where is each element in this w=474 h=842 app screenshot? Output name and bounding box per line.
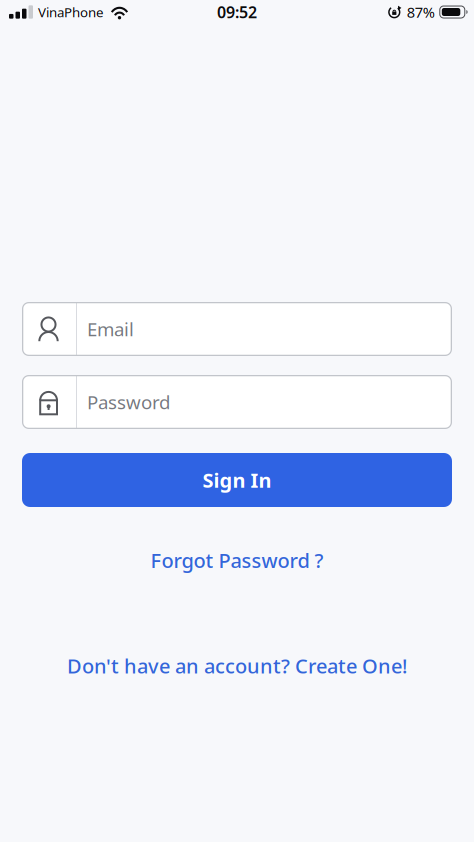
button[interactable]: Password xyxy=(22,375,452,429)
staticText: 09:52 xyxy=(217,1,257,23)
staticText: Password xyxy=(87,390,170,414)
staticText: 87% xyxy=(407,2,435,22)
button[interactable]: Forgot Password ? xyxy=(150,547,323,574)
button[interactable]: Email xyxy=(22,302,452,356)
staticText: VinaPhone xyxy=(38,3,104,21)
button[interactable]: Don't have an account? Create One! xyxy=(67,653,407,679)
button[interactable]: Sign In xyxy=(22,453,452,507)
staticText: Forgot Password ? xyxy=(150,547,323,574)
staticText: Email xyxy=(87,317,134,341)
staticText: Don't have an account? Create One! xyxy=(67,653,407,679)
staticText: Sign In xyxy=(202,467,271,493)
